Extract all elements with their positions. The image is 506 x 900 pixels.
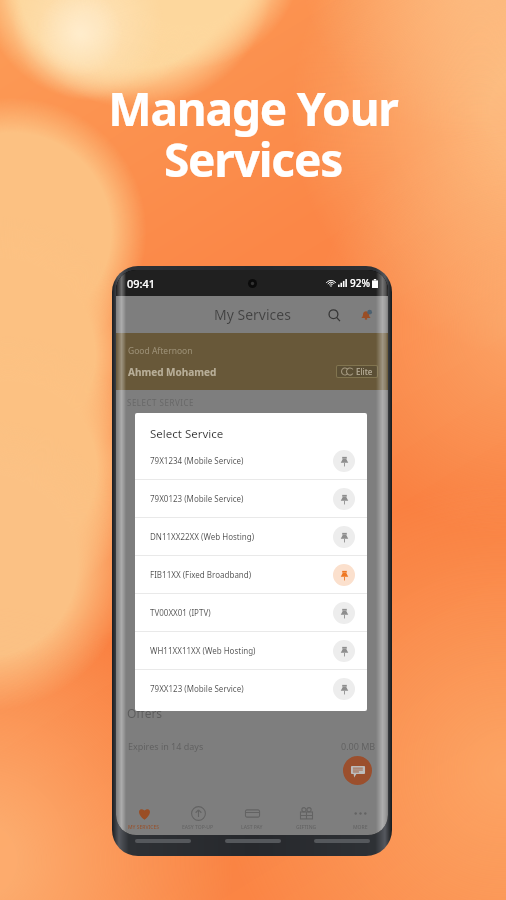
button[interactable]: Notifications bbox=[356, 305, 376, 325]
button[interactable]: Chat bbox=[343, 756, 372, 785]
button[interactable]: GIFTING bbox=[280, 801, 332, 835]
staticText: SELECT SERVICE bbox=[127, 397, 194, 408]
button[interactable]: TV00XX01 (IPTV) bbox=[135, 594, 367, 631]
staticText: My Services bbox=[214, 305, 291, 324]
button[interactable]: LAST PAY bbox=[226, 801, 278, 835]
button[interactable]: EASY TOP-UP bbox=[172, 801, 224, 835]
button[interactable]: 79X1234 (Mobile Service) bbox=[135, 442, 367, 479]
staticText: Offers bbox=[127, 705, 163, 721]
staticText: Good Afternoon bbox=[128, 345, 193, 357]
staticText: 79X1234 (Mobile Service) bbox=[150, 455, 333, 466]
button[interactable]: Elite bbox=[337, 366, 377, 377]
staticText: 0.00 MB bbox=[341, 740, 376, 752]
button[interactable]: FIB11XX (Fixed Broadband) bbox=[135, 556, 367, 593]
staticText: MORE bbox=[353, 824, 368, 831]
staticText: Select Service bbox=[150, 426, 224, 442]
staticText: Ahmed Mohamed bbox=[128, 365, 217, 379]
button[interactable]: 79XX123 (Mobile Service) bbox=[135, 670, 367, 707]
staticText: EASY TOP-UP bbox=[182, 824, 214, 831]
staticText: 79X0123 (Mobile Service) bbox=[150, 493, 333, 504]
staticText: Manage Your Services bbox=[0, 77, 506, 191]
staticText: 09:41 bbox=[127, 276, 156, 291]
staticText: GIFTING bbox=[296, 824, 317, 831]
button[interactable]: Search bbox=[324, 305, 344, 325]
staticText: Elite bbox=[356, 366, 373, 377]
staticText: 92% bbox=[350, 276, 370, 290]
staticText: Expires in 14 days bbox=[128, 740, 204, 752]
staticText: DN11XX22XX (Web Hosting) bbox=[150, 531, 333, 542]
button[interactable]: MORE bbox=[334, 801, 386, 835]
staticText: FIB11XX (Fixed Broadband) bbox=[150, 569, 333, 580]
button[interactable]: MY SERVICES bbox=[118, 801, 170, 835]
button[interactable]: DN11XX22XX (Web Hosting) bbox=[135, 518, 367, 555]
staticText: LAST PAY bbox=[241, 824, 263, 831]
staticText: TV00XX01 (IPTV) bbox=[150, 607, 333, 618]
staticText: MY SERVICES bbox=[128, 824, 160, 831]
button[interactable]: WH11XX11XX (Web Hosting) bbox=[135, 632, 367, 669]
staticText: 79XX123 (Mobile Service) bbox=[150, 683, 333, 694]
staticText: WH11XX11XX (Web Hosting) bbox=[150, 645, 333, 656]
button[interactable]: 79X0123 (Mobile Service) bbox=[135, 480, 367, 517]
